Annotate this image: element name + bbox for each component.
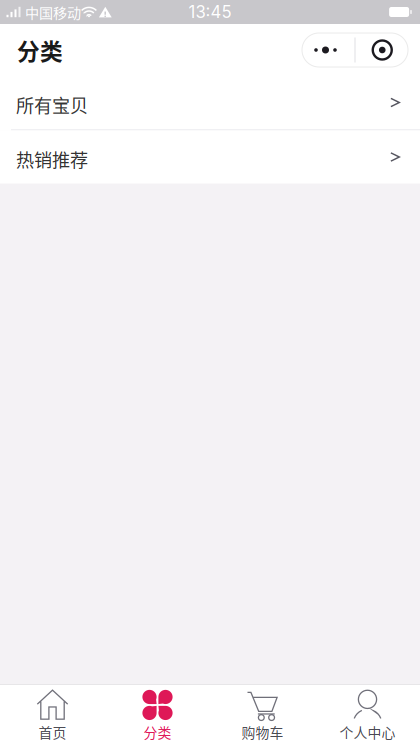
button[interactable]: Close mini program xyxy=(355,33,408,67)
staticText: 13:45 xyxy=(188,2,231,22)
button[interactable]: 购物车 xyxy=(210,684,315,747)
staticText: 中国移动 xyxy=(25,2,81,22)
staticText: 分类 xyxy=(17,34,63,66)
staticText: 购物车 xyxy=(241,722,283,742)
button[interactable]: 分类 xyxy=(105,684,210,747)
staticText: 首页 xyxy=(38,722,66,742)
button[interactable]: 热销推荐 xyxy=(0,130,420,183)
staticText: 所有宝贝 xyxy=(16,91,88,118)
staticText: 个人中心 xyxy=(339,722,395,742)
button[interactable]: 首页 xyxy=(0,684,105,747)
button[interactable]: 个人中心 xyxy=(315,684,420,747)
staticText: 热销推荐 xyxy=(16,146,88,172)
button[interactable]: More xyxy=(302,33,354,67)
staticText: 分类 xyxy=(143,722,171,742)
button[interactable]: 所有宝贝 xyxy=(0,76,420,130)
